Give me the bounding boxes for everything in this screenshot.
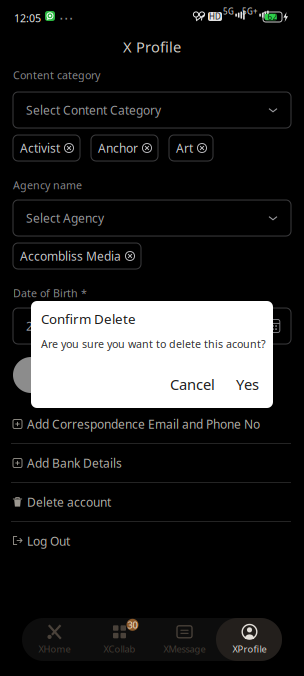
staticText: Cancel	[170, 374, 215, 394]
button[interactable]: Add Correspondence Email and Phone No	[0, 405, 304, 443]
staticText: HD	[209, 11, 221, 22]
staticText: Confirm Delete	[41, 310, 136, 328]
staticText: Accombliss Media	[20, 248, 121, 264]
staticText: XCollab	[103, 643, 135, 655]
staticText: Add Bank Details	[27, 455, 122, 471]
button[interactable]: 30	[87, 618, 152, 661]
staticText: Agency name	[13, 178, 82, 192]
button[interactable]: Anchor	[91, 135, 158, 161]
staticText: Are you sure you want to delete this aco…	[41, 337, 266, 351]
staticText: X Profile	[123, 37, 181, 56]
staticText: 62	[267, 12, 277, 22]
button[interactable]: Cancel	[170, 374, 215, 394]
staticText: Art	[176, 140, 193, 156]
staticText: Select Content Category	[26, 102, 161, 118]
staticText: XMessage	[163, 643, 205, 655]
staticText: 5G+	[242, 6, 258, 17]
button[interactable]: Activist	[13, 135, 80, 161]
staticText: XProfile	[232, 643, 266, 655]
staticText: 12:05	[14, 11, 41, 25]
button[interactable]: Add Bank Details	[0, 444, 304, 482]
staticText: Content category	[13, 68, 100, 82]
button[interactable]: Log Out	[0, 522, 304, 560]
staticText: Log Out	[27, 533, 70, 549]
button[interactable]: XMessage	[152, 618, 217, 661]
button[interactable]: Delete account	[0, 483, 304, 521]
staticText: ⋯	[59, 10, 74, 27]
staticText: Select Agency	[26, 210, 104, 226]
button[interactable]: Select Content Category	[13, 92, 291, 128]
button[interactable]: Accombliss Media	[13, 243, 141, 269]
button[interactable]: Select Agency	[13, 200, 291, 236]
staticText: Anchor	[98, 140, 138, 156]
staticText: 5G	[223, 6, 234, 17]
staticText: XHome	[38, 643, 70, 655]
staticText: Date of Birth *	[13, 286, 87, 300]
staticText: 29/09/1999	[26, 318, 90, 334]
button[interactable]: Save	[13, 357, 115, 393]
button[interactable]: Yes	[215, 374, 267, 394]
button[interactable]: Art	[169, 135, 213, 161]
staticText: Activist	[20, 140, 60, 156]
staticText: Delete account	[27, 494, 111, 510]
staticText: Add Correspondence Email and Phone No	[27, 416, 260, 432]
staticText: 30	[127, 619, 137, 631]
button[interactable]: 29/09/1999	[13, 308, 291, 344]
button[interactable]: XHome	[22, 618, 87, 661]
button[interactable]: XProfile	[217, 618, 282, 661]
staticText: Yes	[236, 374, 259, 394]
